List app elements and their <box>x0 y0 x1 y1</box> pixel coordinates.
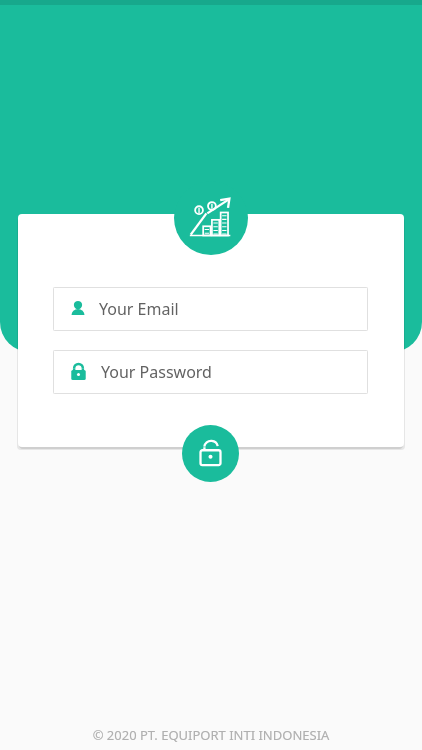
staticText: © 2020 PT. EQUIPORT INTI INDONESIA <box>0 726 422 746</box>
staticText: Your Password <box>101 361 212 383</box>
button[interactable]: Your Password <box>53 350 368 394</box>
button[interactable]: Login <box>182 425 239 482</box>
other: App logo <box>174 181 248 255</box>
button[interactable]: Your Email <box>53 287 368 331</box>
staticText: Your Email <box>99 298 179 320</box>
